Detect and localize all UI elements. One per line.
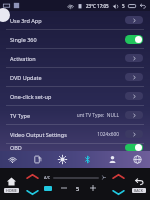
button[interactable]: OBD (0, 144, 150, 151)
button[interactable]: Home (0, 168, 22, 200)
button[interactable]: Toggle (125, 35, 143, 44)
button[interactable]: A/C on (44, 186, 52, 191)
staticText: unt TV Type: NULL (76, 112, 119, 119)
button[interactable]: Increase (88, 183, 98, 193)
button[interactable]: DVD Update (0, 68, 150, 86)
staticText: A/C (44, 175, 51, 180)
button[interactable]: Back (128, 168, 150, 200)
button[interactable]: Wi-Fi (0, 151, 25, 168)
button[interactable]: Open (125, 73, 143, 81)
button[interactable]: Bluetooth (75, 151, 100, 168)
button[interactable]: Decrease (59, 183, 69, 193)
button[interactable]: Single 360 (0, 30, 150, 48)
staticText: Activation (10, 55, 36, 62)
staticText: OBD (10, 144, 22, 151)
staticText: TV Type (10, 112, 31, 119)
button[interactable]: Toggle (125, 144, 143, 151)
staticText: Use 3rd App (10, 17, 42, 24)
staticText: 5 (122, 3, 125, 9)
button[interactable]: TV Type (0, 106, 150, 124)
button[interactable]: Use 3rd App (0, 11, 150, 29)
button[interactable]: Screen mirror (25, 151, 50, 168)
button[interactable]: Open (125, 92, 143, 100)
staticText: Video Output Settings (10, 131, 67, 138)
staticText: 5 (76, 185, 80, 192)
button[interactable]: Left temperature down (25, 187, 39, 197)
button[interactable]: Open (125, 16, 143, 24)
button[interactable]: Left temperature up (25, 171, 39, 182)
button[interactable]: Right temperature down (111, 187, 125, 197)
button[interactable]: One-click set-up (0, 87, 150, 105)
button[interactable]: Open (125, 111, 143, 119)
staticText: HOME (6, 188, 17, 193)
staticText: 1024x600 (97, 131, 119, 138)
button[interactable]: Open (125, 130, 143, 138)
staticText: One-click set-up (10, 93, 52, 100)
button[interactable]: Account (100, 151, 125, 168)
button[interactable]: Brightness (50, 151, 75, 168)
button[interactable]: Video Output Settings (0, 125, 150, 143)
button[interactable]: Activation (0, 49, 150, 67)
button[interactable]: Browser (125, 151, 150, 168)
staticText: DVD Update (10, 74, 42, 81)
staticText: 23°C 17:05 (86, 3, 109, 9)
button[interactable]: Right temperature up (111, 171, 125, 182)
button[interactable]: Open (125, 54, 143, 62)
staticText: BACK (134, 188, 144, 193)
staticText: Single 360 (10, 36, 37, 43)
